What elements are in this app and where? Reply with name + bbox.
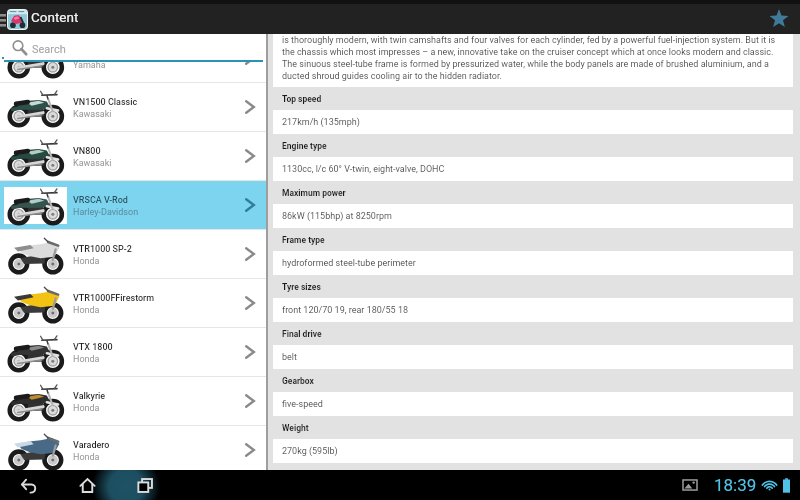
staticText: Gearbox (282, 376, 314, 386)
staticText: The V-Rod is Harley-Davidson's boldest m… (282, 34, 784, 81)
button[interactable]: VN800 (0, 132, 266, 180)
staticText: Final drive (282, 329, 322, 339)
button[interactable]: Valkyrie (0, 377, 266, 425)
staticText: Honda (73, 452, 100, 463)
staticText: front 120/70 19, rear 180/55 18 (282, 305, 408, 316)
staticText: Top speed (282, 94, 322, 104)
staticText: belt (282, 352, 297, 363)
button[interactable]: VTR1000FFirestorm (0, 279, 266, 327)
button[interactable]: App icon (8, 10, 27, 29)
staticText: Maximum power (282, 188, 346, 198)
button[interactable]: Varadero (0, 426, 266, 470)
button[interactable]: Navigation drawer (0, 4, 7, 34)
button[interactable]: VN1500 Classic (0, 83, 266, 131)
button[interactable]: Screenshot (677, 470, 703, 500)
staticText: Tyre sizes (282, 282, 321, 292)
staticText: Kawasaki (73, 158, 112, 169)
button[interactable]: VTR1000 SP-2 (0, 230, 266, 278)
button[interactable]: Favourite (764, 4, 794, 34)
button[interactable]: VTX 1800 (0, 328, 266, 376)
staticText: VN1500 Classic (73, 97, 138, 108)
staticText: VTR1000 SP-2 (73, 244, 132, 255)
staticText: VTR1000FFirestorm (73, 293, 155, 304)
staticText: Honda (73, 403, 100, 414)
staticText: 1130cc, l/c 60° V-twin, eight-valve, DOH… (282, 164, 445, 175)
staticText: VN800 (73, 146, 101, 157)
button[interactable]: VRSCA V-Rod (0, 181, 266, 229)
staticText: Honda (73, 305, 100, 316)
staticText: Valkyrie (73, 391, 106, 402)
staticText: Search (32, 43, 66, 56)
staticText: Engine type (282, 141, 327, 151)
staticText: Content (31, 9, 79, 25)
button[interactable]: Home (65, 470, 109, 500)
staticText: Honda (73, 256, 100, 267)
staticText: five-speed (282, 399, 323, 410)
staticText: 217km/h (135mph) (282, 117, 360, 128)
staticText: VTX 1800 (73, 342, 113, 353)
button[interactable]: Recents (123, 470, 167, 500)
staticText: VRSCA V-Rod (73, 195, 128, 206)
button[interactable]: Back (7, 470, 51, 500)
staticText: Harley-Davidson (73, 207, 139, 218)
staticText: 270kg (595lb) (282, 446, 338, 457)
staticText: 86kW (115bhp) at 8250rpm (282, 211, 392, 222)
staticText: Yamaha (73, 62, 106, 71)
staticText: Varadero (73, 440, 110, 451)
button[interactable]: Search (0, 34, 266, 60)
staticText: Kawasaki (73, 109, 112, 120)
staticText: Weight (282, 423, 309, 433)
staticText: hydroformed steel-tube perimeter (282, 258, 416, 269)
staticText: 18:39 (714, 475, 757, 495)
button[interactable]: Yamaha (0, 62, 266, 82)
staticText: Frame type (282, 235, 325, 245)
staticText: Honda (73, 354, 100, 365)
